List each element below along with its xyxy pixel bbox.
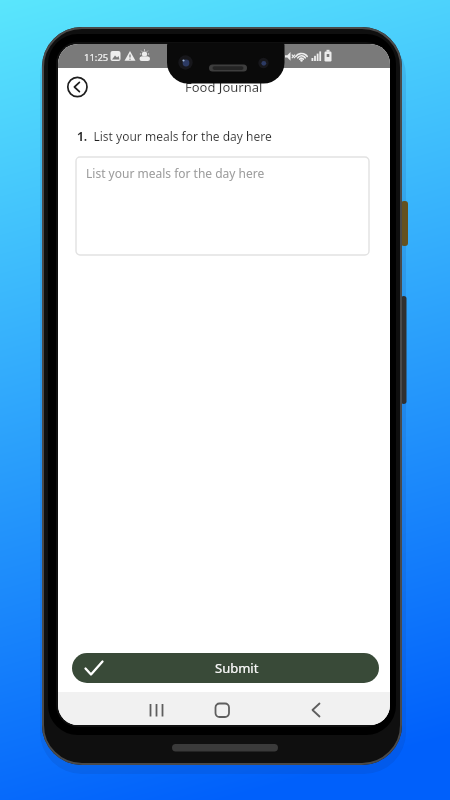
button[interactable] [298,694,334,724]
staticText: List your meals for the day here [86,165,265,181]
button[interactable]: Submit [72,653,379,683]
staticText: Food Journal [185,78,263,96]
button[interactable] [64,74,91,101]
button[interactable] [204,694,240,724]
staticText: Submit [215,659,259,677]
button[interactable]: List your meals for the day here [76,157,369,255]
button[interactable] [138,694,174,724]
staticText: 1. List your meals for the day here [77,128,272,144]
staticText: 11:25 [84,51,109,64]
